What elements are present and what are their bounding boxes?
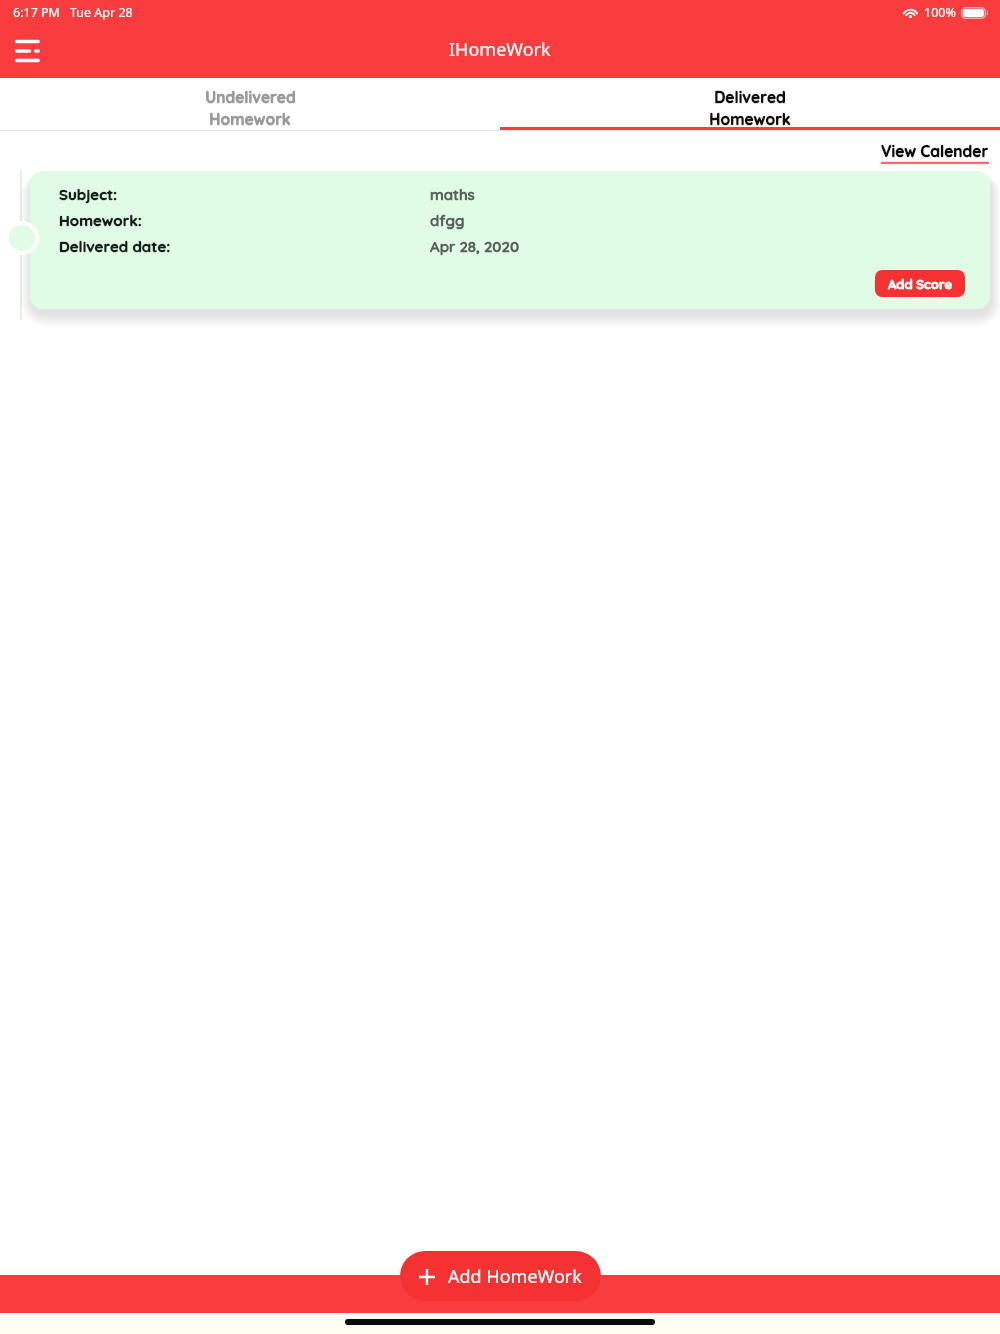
button[interactable]: Delivered	[500, 83, 1000, 131]
staticText: Undelivered	[205, 87, 296, 106]
button[interactable]: Add Score	[875, 270, 965, 297]
staticText: 6:17 PM	[13, 4, 60, 21]
staticText: Homework	[209, 109, 291, 128]
staticText: IHomeWork	[449, 37, 551, 62]
staticText: maths	[430, 185, 475, 204]
staticText: Tue Apr 28	[70, 4, 133, 21]
button[interactable]: Undelivered	[0, 83, 500, 131]
staticText: Delivered date:	[59, 237, 430, 256]
staticText: Homework	[709, 109, 791, 128]
staticText: dfgg	[430, 211, 465, 230]
button[interactable]: Open navigation menu	[0, 26, 55, 76]
staticText: Delivered	[714, 87, 786, 106]
staticText: Subject:	[59, 185, 430, 204]
button[interactable]: View Calender	[881, 141, 989, 165]
staticText: Apr 28, 2020	[430, 237, 520, 256]
staticText: 100%	[924, 4, 956, 21]
staticText: Add HomeWork	[448, 1264, 582, 1289]
button[interactable]: Add HomeWork	[400, 1251, 601, 1301]
button[interactable]: Subject:	[30, 171, 990, 309]
staticText: View Calender	[881, 141, 989, 160]
staticText: Homework:	[59, 211, 430, 230]
staticText: Add Score	[888, 276, 953, 292]
